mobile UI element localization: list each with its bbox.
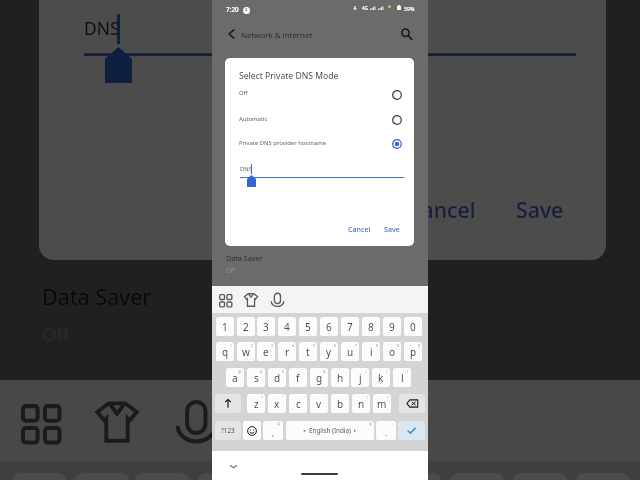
button[interactable]: q (216, 342, 234, 361)
button[interactable]: y (320, 342, 338, 361)
button[interactable]: Stickers (244, 293, 258, 307)
staticText: 9 (397, 343, 399, 348)
button[interactable]: 5 (299, 317, 317, 336)
staticText: 5 (313, 343, 315, 348)
button[interactable]: h (331, 368, 349, 387)
button[interactable]: 9 (383, 317, 401, 336)
button[interactable]: x (268, 394, 286, 413)
staticText: 3 (271, 343, 273, 348)
button[interactable]: 3 (257, 317, 275, 336)
button[interactable]: Toolbox (219, 294, 233, 308)
staticText: r (285, 345, 290, 359)
staticText: Off (226, 266, 236, 274)
button[interactable]: Navigate up (222, 25, 240, 43)
staticText: 9 (389, 320, 395, 334)
button[interactable]: Toolbox (21, 404, 63, 446)
button[interactable]: o (383, 342, 401, 361)
button[interactable]: p (404, 342, 422, 361)
button[interactable]: l (393, 368, 411, 387)
button[interactable]: Automatic (225, 108, 414, 133)
staticText: 7 (355, 343, 357, 348)
button[interactable]: g (310, 368, 328, 387)
staticText: Select Private DNS Mode (239, 70, 339, 82)
button[interactable]: 4 (198, 473, 252, 480)
staticText: ( (386, 369, 388, 374)
button[interactable]: m (373, 394, 391, 413)
button[interactable]: 6 (320, 317, 338, 336)
staticText: $ (282, 369, 284, 374)
staticText: k (378, 371, 384, 385)
button[interactable]: u (341, 342, 359, 361)
staticText: ) (407, 369, 409, 374)
button[interactable]: Backspace (399, 394, 425, 413)
staticText: 7 (347, 320, 353, 334)
button[interactable]: Stickers (96, 401, 138, 443)
button[interactable]: s (247, 368, 265, 387)
button[interactable]: Cancel (343, 223, 375, 235)
button[interactable]: . (376, 421, 396, 440)
button[interactable]: j (351, 368, 369, 387)
button[interactable]: Hide keyboard (228, 461, 239, 472)
button[interactable]: Shift (215, 394, 241, 413)
staticText: ' (304, 395, 305, 400)
button[interactable]: Private DNS provider hostname (225, 132, 414, 157)
staticText: ▸ (354, 428, 357, 433)
button[interactable]: n (352, 394, 370, 413)
button[interactable]: Voice input (177, 401, 216, 443)
button[interactable]: Save (501, 191, 579, 227)
button[interactable]: Voice input (271, 293, 284, 307)
button[interactable]: 2 (237, 317, 255, 336)
button[interactable]: ◂ (286, 421, 374, 440)
button[interactable]: 8 (362, 317, 380, 336)
button[interactable]: k (372, 368, 390, 387)
button[interactable]: 7 (341, 317, 359, 336)
button[interactable]: Cancel (393, 191, 489, 227)
button[interactable]: Emoji (243, 421, 261, 440)
staticText: 5 (305, 320, 311, 334)
button[interactable]: 0 (404, 317, 422, 336)
button[interactable]: b (331, 394, 349, 413)
button[interactable]: 1 (216, 317, 234, 336)
button[interactable]: a (226, 368, 244, 387)
staticText: 8 (368, 320, 374, 334)
staticText: q (222, 345, 229, 359)
staticText: : (325, 395, 326, 400)
button[interactable]: , (263, 421, 283, 440)
button[interactable]: i (362, 342, 380, 361)
staticText: w (242, 345, 250, 359)
button[interactable]: Off (225, 83, 414, 108)
staticText: c (296, 397, 301, 411)
button[interactable]: Search (397, 25, 415, 43)
staticText: DNS (240, 165, 252, 173)
button[interactable]: w (237, 342, 255, 361)
button[interactable]: z (247, 394, 265, 413)
button[interactable]: 4 (278, 317, 296, 336)
button[interactable]: f (289, 368, 307, 387)
button[interactable]: Save (379, 223, 405, 235)
button[interactable]: t (299, 342, 317, 361)
staticText: ° (392, 422, 394, 427)
button[interactable]: d (268, 368, 286, 387)
button[interactable]: e (257, 342, 275, 361)
staticText: ☺ (277, 422, 281, 426)
button[interactable]: ?123 (215, 421, 241, 440)
button[interactable]: 5 (261, 473, 315, 480)
button[interactable]: Enter (398, 421, 425, 440)
staticText: Cancel (348, 224, 371, 234)
button[interactable]: r (278, 342, 296, 361)
button[interactable]: 6 (324, 473, 378, 480)
staticText: ? (387, 395, 389, 400)
button[interactable]: v (310, 394, 328, 413)
button[interactable]: c (289, 394, 307, 413)
staticText: 0 (418, 343, 420, 348)
button[interactable]: 7 (387, 473, 441, 480)
staticText: d (274, 371, 281, 385)
staticText: Off (239, 89, 248, 97)
staticText: l (401, 371, 404, 385)
